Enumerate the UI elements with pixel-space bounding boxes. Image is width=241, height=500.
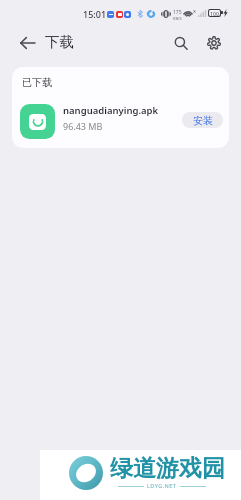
- staticText: LDYG.NET: [147, 482, 177, 490]
- button[interactable]: nanguadianying.apk: [12, 93, 229, 148]
- staticText: 175: [173, 9, 182, 16]
- staticText: x: [193, 7, 196, 14]
- button[interactable]: Search: [168, 30, 195, 57]
- staticText: KB/S: [173, 16, 182, 21]
- staticText: 下载: [45, 33, 74, 51]
- staticText: 已下载: [22, 76, 52, 89]
- staticText: 100: [210, 10, 219, 16]
- staticText: 96.43 MB: [63, 120, 103, 132]
- button[interactable]: Settings: [200, 29, 227, 56]
- staticText: nanguadianying.apk: [63, 104, 159, 117]
- staticText: 绿道游戏园: [110, 454, 225, 483]
- staticText: 15:01: [83, 8, 107, 20]
- button[interactable]: 安装: [182, 112, 223, 128]
- staticText: 安装: [193, 114, 213, 127]
- button[interactable]: Back: [14, 30, 40, 56]
